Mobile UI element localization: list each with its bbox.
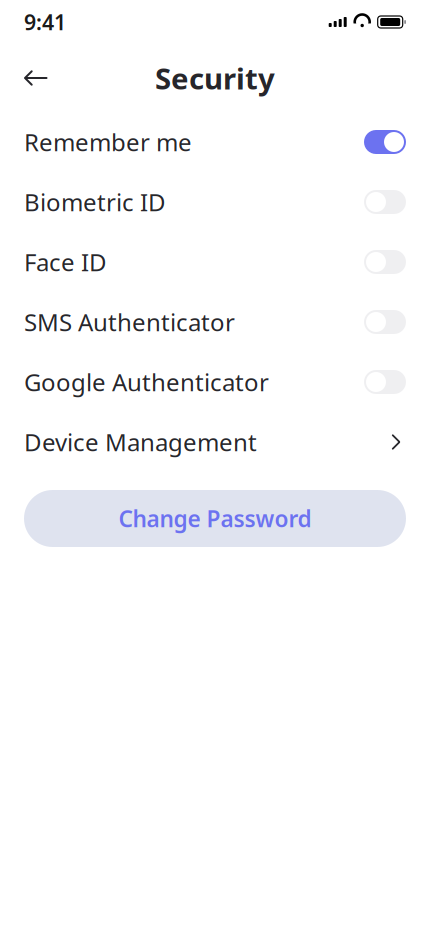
- staticText: Change Password: [118, 503, 311, 533]
- staticText: Biometric ID: [24, 186, 166, 218]
- button[interactable]: Device Management: [0, 412, 430, 472]
- staticText: Device Management: [24, 426, 257, 458]
- staticText: Security: [155, 58, 275, 97]
- button[interactable]: Face ID: [0, 232, 430, 292]
- staticText: 9:41: [24, 8, 66, 36]
- staticText: Remember me: [24, 126, 192, 158]
- staticText: Google Authenticator: [24, 366, 269, 398]
- button[interactable]: Biometric ID: [0, 172, 430, 232]
- button[interactable]: Google Authenticator: [0, 352, 430, 412]
- button[interactable]: SMS Authenticator: [0, 292, 430, 352]
- button[interactable]: Change Password: [24, 490, 406, 547]
- button[interactable]: Back: [14, 56, 58, 100]
- staticText: Face ID: [24, 246, 107, 278]
- button[interactable]: Remember me: [0, 112, 430, 172]
- staticText: SMS Authenticator: [24, 306, 235, 338]
